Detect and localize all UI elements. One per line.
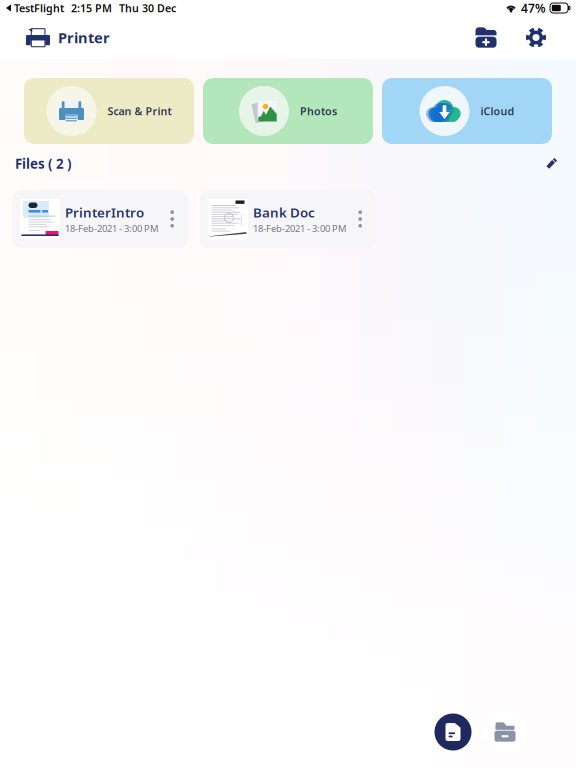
staticText: Files ( 2 )	[15, 155, 72, 172]
staticText: PrinterIntro	[65, 203, 144, 221]
staticText: Scan & Print	[107, 104, 171, 118]
staticText: 47%	[521, 0, 546, 16]
button[interactable]: Photos	[203, 78, 373, 144]
staticText: Thu 30 Dec	[119, 1, 176, 15]
staticText: iCloud	[480, 104, 514, 118]
staticText: 2:15 PM	[71, 1, 112, 15]
staticText: 18-Feb-2021 - 3:00 PM	[65, 222, 158, 235]
button[interactable]: Scan & Print	[24, 78, 194, 144]
button[interactable]: New document	[433, 712, 473, 752]
button[interactable]: New folder	[471, 22, 501, 52]
staticText: Bank Doc	[253, 203, 315, 221]
button[interactable]: Edit	[539, 151, 564, 176]
button[interactable]: Settings	[501, 22, 551, 52]
button[interactable]: iCloud	[382, 78, 552, 144]
staticText: 18-Feb-2021 - 3:00 PM	[253, 222, 346, 235]
staticText: Photos	[300, 104, 337, 118]
staticText: Printer	[58, 28, 110, 47]
button[interactable]: Bank Doc	[200, 190, 376, 248]
staticText: TestFlight	[14, 1, 64, 15]
button[interactable]: Saved files	[480, 707, 530, 757]
button[interactable]: PrinterIntro	[12, 190, 188, 248]
